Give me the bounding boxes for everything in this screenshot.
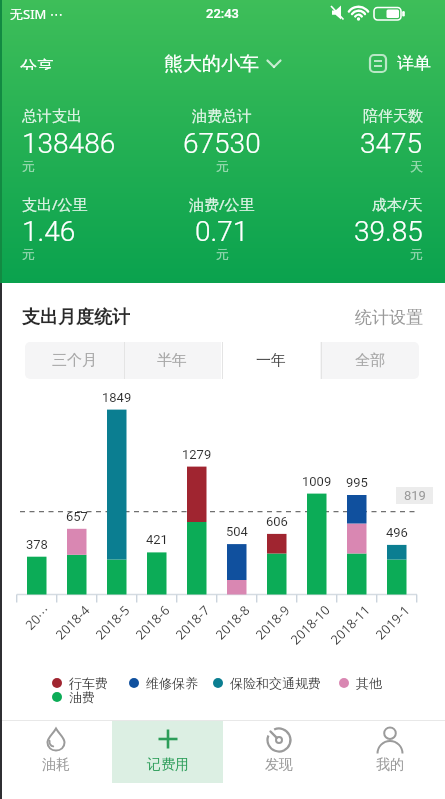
- button[interactable]: 我的: [334, 721, 445, 783]
- staticText: 2018-4: [51, 601, 92, 641]
- staticText: 2018-10: [286, 601, 332, 646]
- button[interactable]: 分享: [12, 49, 62, 78]
- staticText: 20⋯: [21, 601, 52, 631]
- staticText: 元: [216, 158, 229, 174]
- staticText: 606: [266, 514, 288, 529]
- staticText: 0.71: [195, 215, 249, 243]
- staticText: 1009: [302, 474, 332, 489]
- staticText: 22:43: [206, 6, 240, 21]
- staticText: 油费: [69, 689, 95, 704]
- staticText: 819: [404, 488, 426, 503]
- staticText: 分享: [20, 57, 54, 70]
- staticText: 元: [22, 158, 35, 174]
- button[interactable]: 熊大的小车: [164, 52, 282, 76]
- staticText: 39.85: [354, 215, 423, 243]
- staticText: 油耗: [42, 756, 70, 774]
- staticText: 2018-8: [211, 601, 252, 641]
- button[interactable]: 详单: [369, 53, 431, 74]
- button[interactable]: 半年: [123, 342, 221, 379]
- button[interactable]: 发现: [223, 721, 334, 783]
- staticText: 378: [26, 537, 48, 552]
- staticText: 发现: [265, 756, 293, 774]
- staticText: 油费总计: [192, 107, 252, 126]
- staticText: 2019-1: [371, 601, 412, 641]
- staticText: 496: [386, 525, 408, 540]
- staticText: 我的: [376, 756, 404, 774]
- staticText: 657: [66, 509, 88, 524]
- staticText: 无SIM ⋯: [10, 5, 63, 23]
- staticText: 陪伴天数: [363, 107, 423, 126]
- button[interactable]: 一年: [221, 342, 320, 379]
- button[interactable]: 统计设置: [355, 307, 423, 328]
- staticText: 2018-11: [326, 601, 372, 646]
- staticText: 其他: [356, 675, 382, 690]
- staticText: 2018-7: [171, 601, 212, 641]
- staticText: 维修保养: [146, 675, 198, 690]
- staticText: 2018-5: [91, 601, 132, 641]
- button[interactable]: 三个月: [25, 342, 123, 379]
- staticText: 2018-6: [131, 601, 172, 641]
- staticText: 三个月: [52, 351, 97, 370]
- staticText: 元: [22, 246, 35, 262]
- staticText: 67530: [183, 127, 261, 155]
- staticText: 半年: [157, 351, 187, 370]
- staticText: 天: [410, 158, 423, 174]
- staticText: 支出月度统计: [22, 306, 130, 328]
- staticText: 统计设置: [355, 307, 423, 328]
- staticText: 保险和交通规费: [230, 675, 321, 690]
- staticText: 记费用: [147, 756, 189, 774]
- staticText: 行车费: [69, 675, 108, 690]
- staticText: 支出/公里: [22, 194, 88, 214]
- staticText: 138486: [22, 127, 116, 155]
- button[interactable]: 记费用: [112, 721, 223, 783]
- staticText: 3475: [360, 127, 423, 155]
- staticText: 504: [226, 524, 248, 539]
- staticText: 一年: [256, 351, 286, 370]
- staticText: 2018-9: [251, 601, 292, 641]
- staticText: 油费/公里: [189, 194, 255, 214]
- staticText: 1279: [182, 447, 212, 462]
- staticText: 1.46: [22, 215, 76, 243]
- staticText: 总计支出: [22, 107, 82, 126]
- button[interactable]: 油耗: [0, 721, 112, 783]
- staticText: 元: [216, 246, 229, 262]
- staticText: 元: [410, 246, 423, 262]
- button[interactable]: 全部: [320, 342, 419, 379]
- staticText: 成本/天: [372, 194, 423, 214]
- staticText: 421: [146, 532, 168, 547]
- staticText: 995: [346, 475, 368, 490]
- staticText: 详单: [397, 53, 431, 74]
- staticText: 熊大的小车: [164, 52, 259, 76]
- staticText: 全部: [355, 351, 385, 370]
- staticText: 1849: [102, 390, 132, 405]
